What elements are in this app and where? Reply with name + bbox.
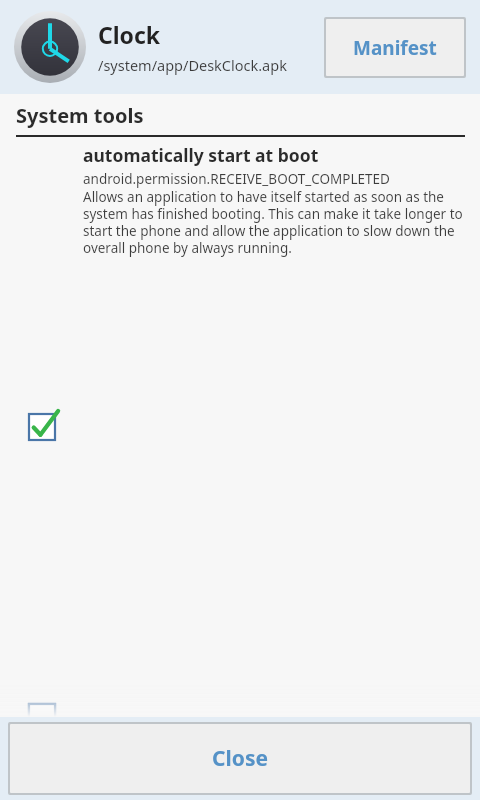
staticText: android.permission.RECEIVE_BOOT_COMPLETE… (83, 170, 390, 188)
staticText: Clock (98, 19, 161, 50)
staticText: Close (212, 744, 268, 773)
staticText: Allows an application to have itself sta… (83, 188, 465, 257)
staticText: automatically start at boot (83, 143, 319, 167)
staticText: Manifest (353, 35, 437, 61)
button[interactable]: Close (10, 724, 470, 793)
button[interactable]: automatically start at boot (0, 137, 480, 717)
staticText: /system/app/DeskClock.apk (98, 55, 287, 75)
button[interactable]: Manifest (326, 19, 464, 76)
staticText: System tools (16, 102, 144, 129)
